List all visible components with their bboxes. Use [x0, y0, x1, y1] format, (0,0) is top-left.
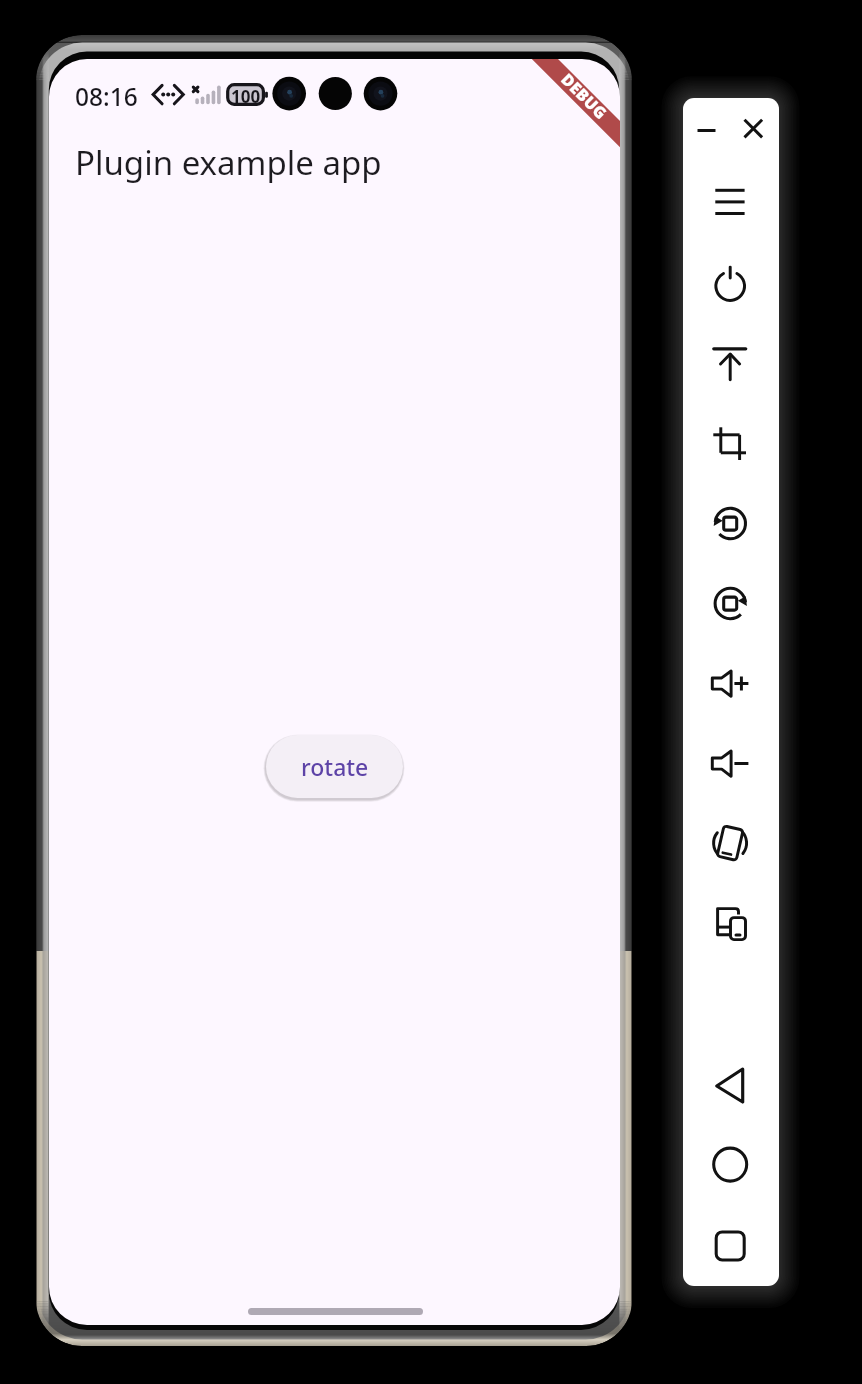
staticText: rotate: [301, 751, 369, 782]
button[interactable]: Back: [712, 1068, 748, 1104]
button[interactable]: Tilt device: [712, 826, 748, 862]
staticText: 100: [231, 85, 261, 108]
button[interactable]: Recent apps: [712, 1228, 748, 1264]
button[interactable]: Home: [712, 1147, 748, 1183]
staticText: DEBUG: [556, 68, 612, 124]
button[interactable]: Screenshot: [712, 426, 748, 462]
button[interactable]: Rotate right: [712, 586, 748, 622]
button[interactable]: Fold device: [712, 905, 748, 941]
button[interactable]: Minimize: [697, 118, 733, 144]
button[interactable]: Power: [712, 268, 748, 304]
button[interactable]: Close: [740, 115, 768, 143]
button[interactable]: Volume down: [712, 746, 748, 782]
staticText: Plugin example app: [75, 140, 382, 185]
staticText: 08:16: [75, 80, 138, 113]
button[interactable]: Volume up key: [712, 347, 748, 383]
button[interactable]: rotate: [266, 735, 403, 798]
button[interactable]: Volume up: [712, 666, 748, 702]
button[interactable]: Menu: [712, 184, 748, 220]
button[interactable]: Rotate left: [712, 506, 748, 542]
